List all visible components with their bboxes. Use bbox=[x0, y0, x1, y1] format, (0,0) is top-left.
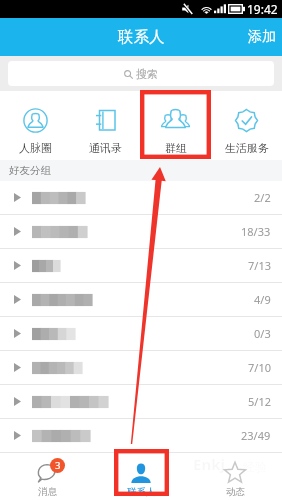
staticText: 18/33 bbox=[241, 224, 271, 239]
staticText: 经验 bbox=[243, 459, 267, 474]
button[interactable]: 0/3 bbox=[0, 317, 282, 350]
button[interactable]: 联系人 bbox=[94, 453, 188, 500]
button[interactable]: 搜索 bbox=[8, 61, 274, 86]
staticText: 通讯录 bbox=[89, 141, 122, 155]
button[interactable]: 群组 bbox=[140, 91, 211, 160]
staticText: 动态 bbox=[226, 486, 245, 498]
staticText: 7/13 bbox=[248, 258, 271, 273]
staticText: 生活服务 bbox=[225, 141, 269, 155]
staticText: 添加 bbox=[248, 28, 276, 46]
staticText: 0/3 bbox=[254, 326, 271, 341]
staticText: 5/12 bbox=[248, 394, 271, 409]
button[interactable]: 人脉圈 bbox=[0, 91, 70, 160]
button[interactable]: 5/12 bbox=[0, 385, 282, 418]
button[interactable]: 添加 bbox=[242, 18, 282, 56]
staticText: 3 bbox=[55, 459, 61, 472]
button[interactable]: 动态 bbox=[188, 453, 282, 500]
staticText: 19:42 bbox=[247, 1, 278, 17]
staticText: 23/49 bbox=[241, 428, 271, 443]
button[interactable]: 23/49 bbox=[0, 419, 282, 452]
button[interactable]: 通讯录 bbox=[70, 91, 140, 160]
button[interactable]: 7/10 bbox=[0, 351, 282, 384]
button[interactable]: 2/2 bbox=[0, 181, 282, 214]
staticText: 7/10 bbox=[248, 360, 271, 375]
staticText: 联系人 bbox=[127, 486, 156, 498]
staticText: 消息 bbox=[38, 486, 57, 498]
button[interactable]: 18/33 bbox=[0, 215, 282, 248]
staticText: 搜索 bbox=[136, 67, 158, 81]
staticText: 群组 bbox=[165, 141, 187, 155]
staticText: 联系人 bbox=[118, 27, 165, 47]
button[interactable]: 生活服务 bbox=[211, 91, 282, 160]
staticText: 好友分组 bbox=[9, 164, 51, 177]
staticText: 2/2 bbox=[254, 190, 271, 205]
staticText: 4/9 bbox=[254, 292, 271, 307]
button[interactable]: 3 bbox=[0, 453, 94, 500]
button[interactable]: 4/9 bbox=[0, 283, 282, 316]
button[interactable]: 7/13 bbox=[0, 249, 282, 282]
staticText: Enkj bbox=[193, 454, 225, 474]
staticText: 人脉圈 bbox=[19, 141, 52, 155]
